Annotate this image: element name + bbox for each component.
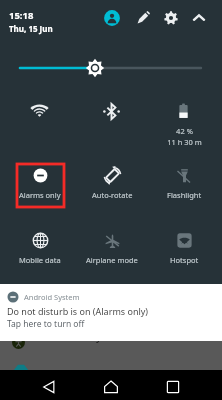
button[interactable]: Home	[100, 376, 122, 398]
button[interactable]: Bluetooth	[100, 100, 123, 123]
button[interactable]: Account	[103, 9, 121, 27]
staticText: Do not disturb is on (Alarms only)	[7, 305, 149, 317]
button[interactable]: Mobile data	[3, 229, 77, 269]
staticText: Auto-rotate	[92, 190, 133, 200]
button[interactable]: Flashlight	[147, 164, 221, 204]
staticText: Airplane mode	[86, 255, 138, 265]
button[interactable]: Edit	[134, 9, 152, 27]
staticText: Accessibility	[46, 331, 102, 344]
staticText: 42 %	[176, 126, 193, 136]
button[interactable]: Back	[38, 376, 60, 398]
staticText: Tap here to turn off	[7, 318, 85, 330]
staticText: Alarms only	[19, 190, 61, 200]
button[interactable]: Auto-rotate	[75, 164, 149, 204]
button[interactable]: Recents	[162, 376, 184, 398]
staticText: Thu, 15 Jun	[9, 23, 53, 34]
staticText: 11 h 30 m	[167, 137, 202, 147]
button[interactable]: Battery	[172, 100, 195, 123]
staticText: Android System	[24, 292, 80, 302]
staticText: Hotspot	[170, 255, 199, 265]
button[interactable]: Settings	[162, 9, 180, 27]
staticText: 15:18	[9, 9, 34, 22]
button[interactable]: Alarms only	[3, 164, 77, 204]
button[interactable]: Collapse	[190, 9, 208, 27]
button[interactable]: Android System	[0, 284, 222, 341]
button[interactable]: Wi-Fi	[28, 100, 51, 123]
button[interactable]: Airplane mode	[75, 229, 149, 269]
staticText: Flashlight	[167, 190, 202, 200]
button[interactable]: Hotspot	[147, 229, 221, 269]
button[interactable]: Brightness	[10, 56, 212, 80]
staticText: Mobile data	[19, 255, 61, 265]
